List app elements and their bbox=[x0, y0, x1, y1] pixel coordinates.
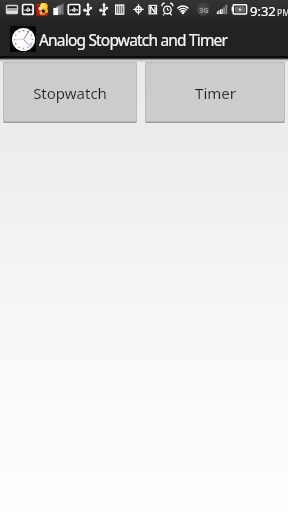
staticText: 3G bbox=[199, 5, 209, 15]
button[interactable]: Stopwatch bbox=[3, 62, 137, 123]
staticText: Stopwatch bbox=[33, 83, 107, 103]
staticText: 9:32 bbox=[250, 2, 276, 20]
button[interactable]: Timer bbox=[145, 62, 285, 123]
staticText: Analog Stopwatch and Timer bbox=[39, 29, 228, 50]
staticText: Timer bbox=[195, 83, 236, 103]
staticText: PM bbox=[277, 7, 288, 19]
